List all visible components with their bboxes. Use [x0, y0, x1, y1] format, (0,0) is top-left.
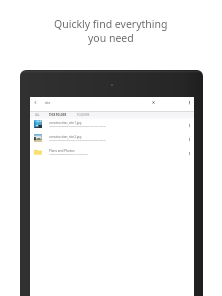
button[interactable]: construction_site2.jpg	[30, 132, 194, 145]
staticText: site	[45, 101, 51, 105]
staticText: /Shared/Marketing/Product Marketing/Plan…	[49, 139, 106, 142]
button[interactable]: More options	[187, 151, 192, 156]
staticText: Quickly find everything	[54, 17, 168, 31]
staticText: /Shared/Marketing/Product Marketing	[49, 153, 88, 156]
staticText: /Shared/Marketing/Product Marketing/Plan…	[49, 125, 106, 128]
button[interactable]: THIS FOLDER	[49, 113, 67, 117]
button[interactable]: ALL	[35, 113, 40, 117]
button[interactable]: construction_site1.jpg	[30, 118, 194, 131]
staticText: Plans and Photos	[49, 149, 75, 153]
button[interactable]: FOLDERS	[77, 113, 90, 117]
staticText: THIS FOLDER	[49, 113, 67, 117]
button[interactable]: More options	[187, 137, 192, 142]
staticText: ALL	[35, 113, 40, 117]
staticText: FOLDERS	[77, 113, 90, 117]
button[interactable]: Back	[30, 97, 194, 111]
staticText: you need	[88, 31, 134, 45]
staticText: construction_site1.jpg	[49, 121, 82, 125]
button[interactable]: More options	[187, 100, 192, 105]
button[interactable]: Clear search	[151, 100, 156, 105]
staticText: construction_site2.jpg	[49, 135, 82, 139]
button[interactable]: Plans and Photos	[30, 146, 194, 159]
button[interactable]: Back	[33, 100, 38, 105]
button[interactable]: More options	[187, 123, 192, 128]
